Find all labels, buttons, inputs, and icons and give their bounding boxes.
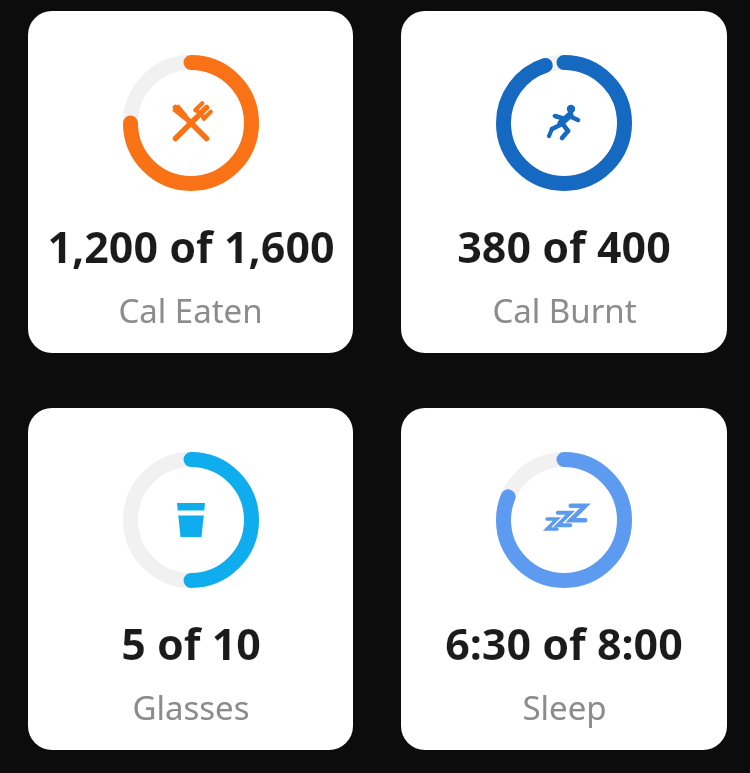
staticText: 380 of 400 [457,217,671,276]
button[interactable]: Cal Eaten [28,11,353,353]
staticText: Cal Eaten [118,288,263,333]
button[interactable]: Glasses [28,408,353,750]
staticText: Glasses [132,685,250,730]
button[interactable]: Cal Burnt [401,11,727,353]
staticText: 6:30 of 8:00 [445,614,683,673]
staticText: Sleep [522,685,607,730]
staticText: Cal Burnt [492,288,637,333]
staticText: 1,200 of 1,600 [47,217,335,276]
staticText: 5 of 10 [121,614,261,673]
button[interactable]: Sleep [401,408,727,750]
